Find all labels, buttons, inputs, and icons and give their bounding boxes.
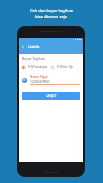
staticText: 1234567890 [30,79,50,84]
other: Back [21,45,25,49]
staticText: PLN Non Tgh [57,65,73,69]
staticText: Bayar Tagihan [22,56,46,61]
staticText: Cek dan bayar tagihan [30,8,74,14]
button[interactable]: Back [19,39,83,54]
staticText: LANJUT [46,94,57,98]
staticText: Listrik [28,44,40,49]
staticText: Nomor Plggn [30,75,48,79]
button[interactable]: LANJUT [22,92,80,100]
staticText: bisa dimana saja [35,14,68,20]
staticText: PLN Pascabayar [28,65,48,69]
